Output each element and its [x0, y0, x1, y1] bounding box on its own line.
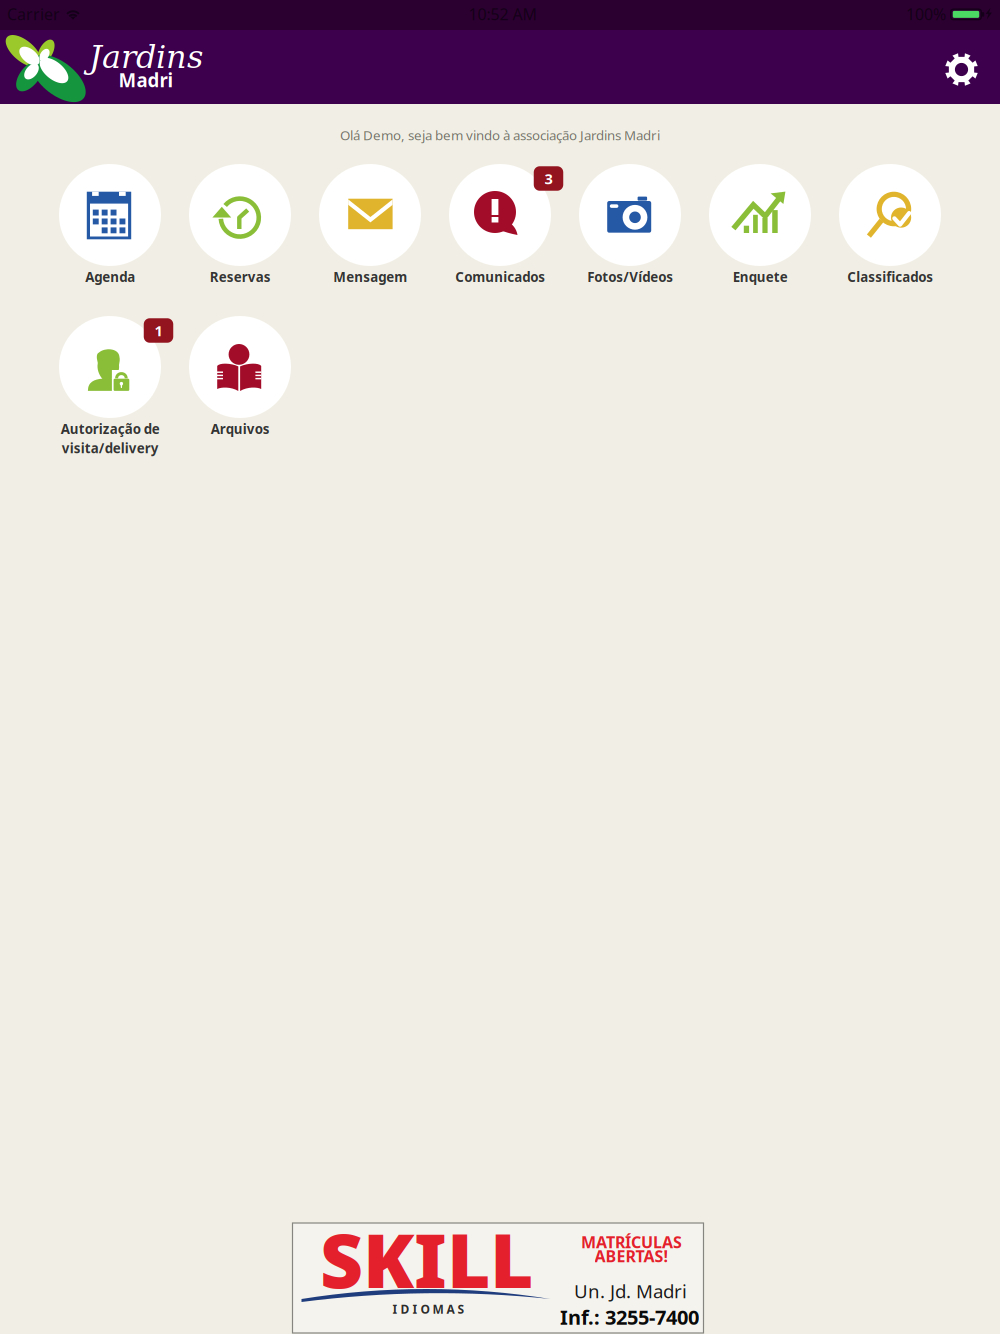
staticText: Enquete: [732, 268, 787, 286]
staticText: Madri: [118, 68, 173, 92]
staticText: 10:52 AM: [468, 3, 537, 25]
staticText: Arquivos: [210, 420, 269, 438]
staticText: Un. Jd. Madri: [574, 1279, 687, 1303]
staticText: Carrier: [7, 3, 60, 25]
button[interactable]: Agenda: [45, 164, 175, 310]
staticText: Reservas: [209, 268, 270, 286]
staticText: 3: [544, 169, 552, 188]
staticText: Agenda: [85, 268, 135, 286]
staticText: ABERTAS!: [594, 1245, 668, 1267]
button[interactable]: SKILL: [292, 1223, 703, 1333]
button[interactable]: Enquete: [695, 164, 825, 310]
button[interactable]: Arquivos: [175, 316, 305, 462]
staticText: Mensagem: [333, 268, 407, 286]
staticText: 1: [154, 321, 162, 340]
staticText: Jardins: [89, 38, 203, 76]
button[interactable]: Fotos/Vídeos: [565, 164, 695, 310]
button[interactable]: Reservas: [175, 164, 305, 310]
staticText: Classificados: [847, 268, 933, 286]
button[interactable]: Settings: [935, 43, 987, 95]
button[interactable]: Mensagem: [305, 164, 435, 310]
staticText: I D I O M A S: [392, 1301, 464, 1317]
staticText: Autorização de visita/delivery: [60, 420, 159, 457]
staticText: MATRÍCULAS: [581, 1231, 682, 1253]
staticText: 100%: [906, 3, 946, 25]
button[interactable]: 3: [435, 164, 565, 310]
staticText: Inf.: 3255-7400: [560, 1304, 699, 1330]
staticText: Comunicados: [455, 268, 545, 286]
staticText: SKILL: [320, 1209, 533, 1309]
staticText: Fotos/Vídeos: [587, 268, 673, 286]
staticText: Olá Demo, seja bem vindo à associação Ja…: [340, 126, 660, 144]
button[interactable]: Classificados: [825, 164, 955, 310]
button[interactable]: 1: [45, 316, 175, 462]
